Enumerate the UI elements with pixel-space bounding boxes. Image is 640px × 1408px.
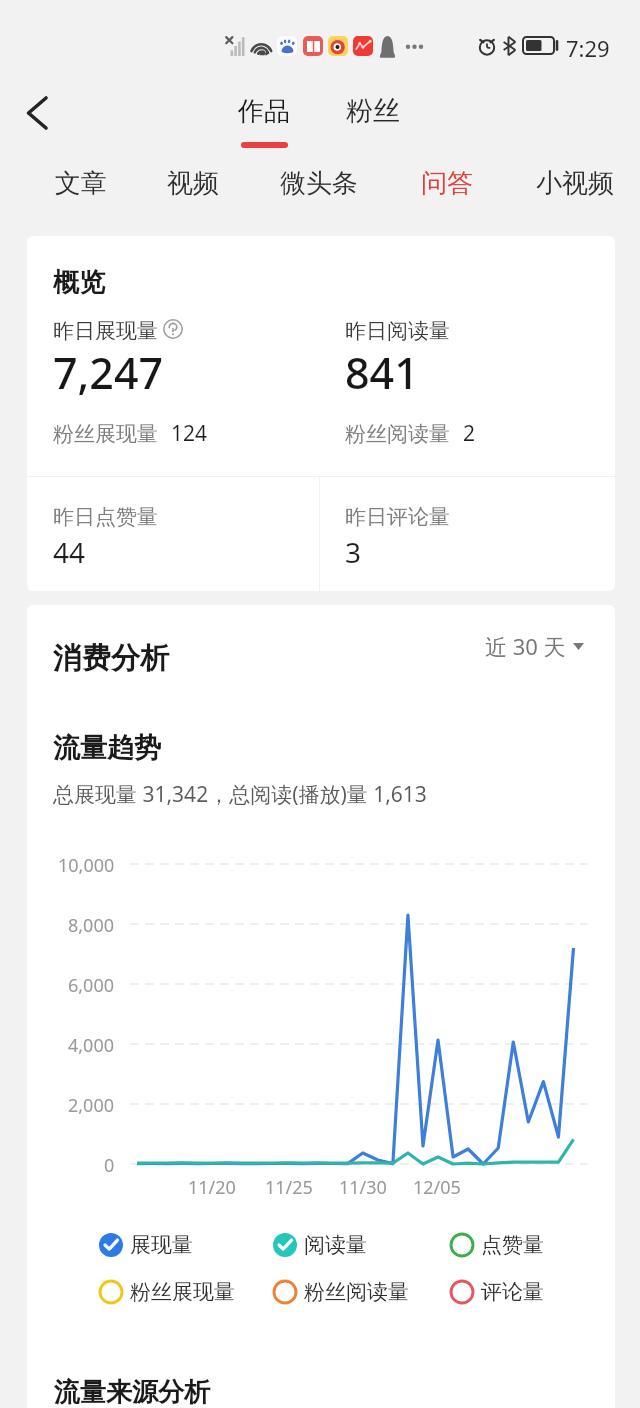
staticText: 昨日评论量 [345,504,450,530]
staticText: 3 [345,533,362,571]
button[interactable]: 近 30 天 [477,623,592,669]
button[interactable]: 阅读量 [270,1228,369,1262]
button[interactable]: 作品 [231,88,299,150]
button[interactable]: 问答 [410,160,484,206]
staticText: 6,000 [68,973,115,998]
staticText: 总展现量 31,342，总阅读(播放)量 1,613 [53,780,427,809]
staticText: 粉丝阅读量 [304,1279,409,1305]
button[interactable]: 小视频 [525,160,625,206]
button[interactable]: Back [10,89,62,137]
staticText: 流量来源分析 [54,1376,210,1408]
staticText: 昨日阅读量 [345,318,450,344]
button[interactable]: 粉丝展现量 [96,1275,237,1309]
staticText: 0 [104,1153,115,1178]
staticText: 展现量 [130,1232,193,1258]
staticText: 11/20 [188,1175,236,1200]
staticText: 昨日展现量 [53,318,158,344]
staticText: 昨日点赞量 [53,504,158,530]
staticText: 微头条 [280,167,358,200]
staticText: 粉丝 [346,94,400,128]
button[interactable]: 评论量 [447,1275,546,1309]
button[interactable]: 粉丝阅读量 [270,1275,411,1309]
staticText: 阅读量 [304,1232,367,1258]
staticText: 近 30 天 [485,631,566,661]
staticText: 小视频 [536,167,614,200]
staticText: 4,000 [68,1033,115,1058]
button[interactable]: 粉丝 [339,88,411,150]
staticText: 12/05 [413,1175,461,1200]
staticText: 2,000 [68,1093,115,1118]
button[interactable]: 微头条 [269,160,369,206]
button[interactable]: 展现量 [96,1228,195,1262]
staticText: 消费分析 [53,640,169,677]
staticText: 粉丝展现量 [53,421,158,447]
staticText: 文章 [55,167,107,200]
staticText: 8,000 [68,913,115,938]
staticText: 概览 [53,266,105,299]
staticText: 评论量 [481,1279,544,1305]
staticText: 视频 [167,167,219,200]
button[interactable]: 文章 [44,160,118,206]
staticText: 粉丝展现量 [130,1279,235,1305]
button[interactable]: 点赞量 [447,1228,546,1262]
staticText: 流量趋势 [53,731,161,765]
staticText: 11/30 [339,1175,387,1200]
staticText: 问答 [421,167,473,200]
staticText: 10,000 [58,853,115,878]
button[interactable]: 视频 [156,160,230,206]
staticText: 粉丝阅读量 [345,421,450,447]
staticText: 作品 [238,95,290,128]
staticText: 841 [345,343,419,402]
staticText: 点赞量 [481,1232,544,1258]
staticText: 7:29 [566,33,610,63]
staticText: 11/25 [265,1175,313,1200]
staticText: 124 [171,419,208,448]
staticText: 7,247 [53,343,164,402]
staticText: 44 [53,533,86,571]
staticText: 2 [463,419,476,448]
